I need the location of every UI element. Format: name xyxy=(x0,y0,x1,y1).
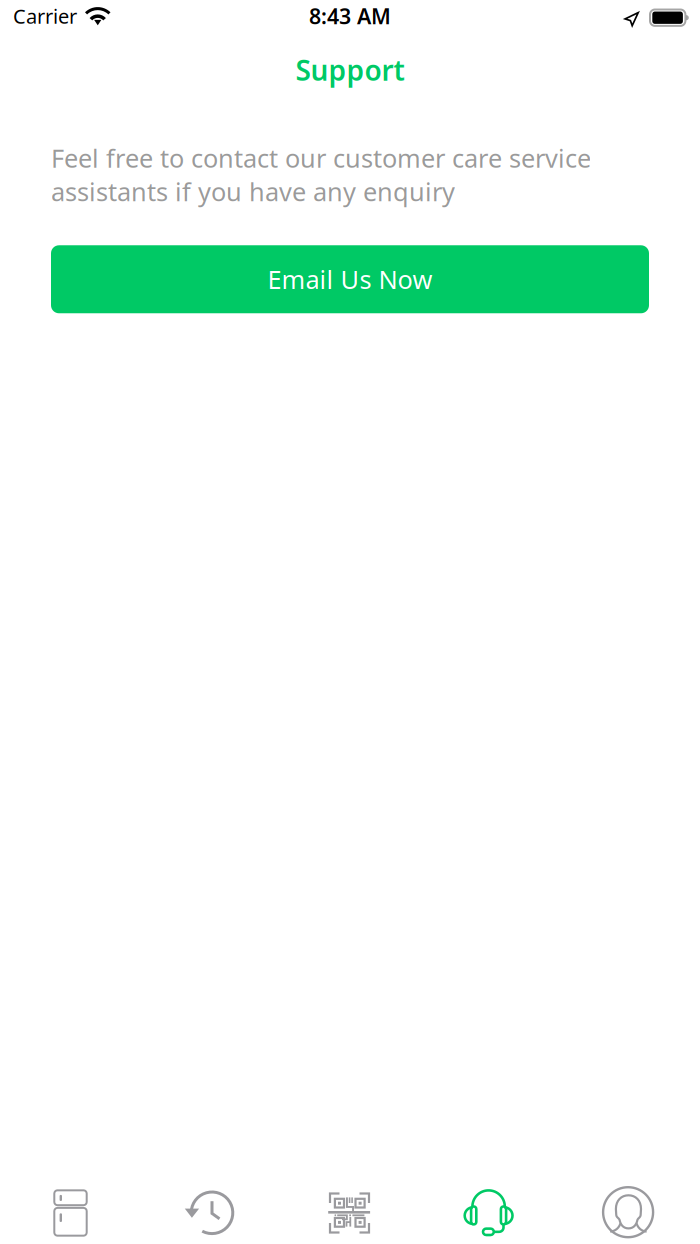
staticText: Support xyxy=(295,51,404,89)
staticText: Feel free to contact our customer care s… xyxy=(51,141,591,208)
staticText: 8:43 AM xyxy=(309,2,391,30)
button[interactable]: Scan code xyxy=(280,1182,420,1244)
button[interactable]: History xyxy=(140,1182,280,1244)
button[interactable]: Email Us Now xyxy=(51,245,649,313)
staticText: Carrier xyxy=(13,3,77,29)
staticText: Email Us Now xyxy=(267,262,432,296)
button[interactable]: Fridge xyxy=(0,1182,140,1244)
button[interactable]: Profile xyxy=(560,1182,700,1244)
button[interactable]: Support xyxy=(420,1182,560,1244)
